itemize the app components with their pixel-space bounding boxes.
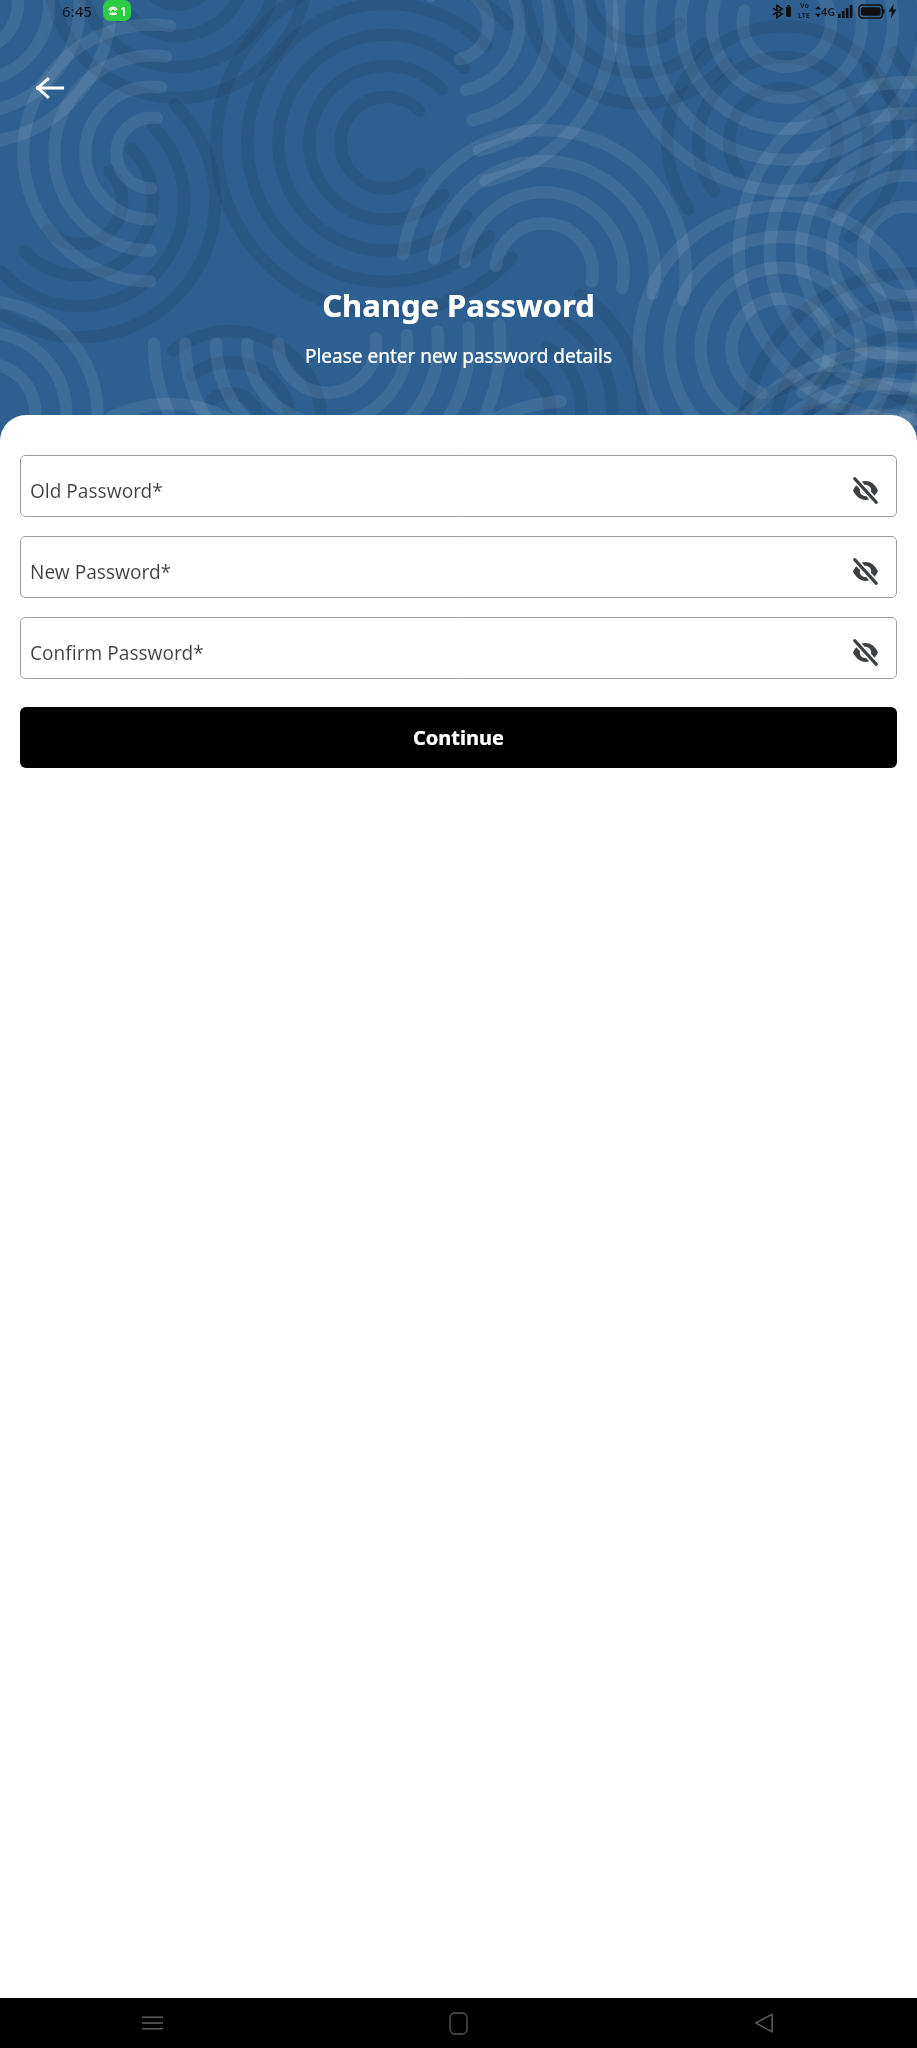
staticText: Old Password* [30,478,163,504]
button[interactable]: Confirm Password* [20,617,897,679]
button[interactable]: Show password [845,470,885,510]
staticText: Vo [800,1,809,11]
button[interactable]: Back [22,60,78,116]
staticText: 1 [120,3,127,19]
staticText: New Password* [30,559,172,585]
button[interactable]: Show password [845,632,885,672]
button[interactable]: Continue [20,707,897,768]
button[interactable]: Recent apps [0,1998,305,2048]
staticText: Change Password [0,284,917,326]
button[interactable]: New Password* [20,536,897,598]
button[interactable]: Show password [845,551,885,591]
staticText: Continue [413,724,504,751]
button[interactable]: Home [305,1998,611,2048]
staticText: 4G [821,4,836,19]
button[interactable]: Back [611,1998,917,2048]
staticText: 6:45 [62,1,92,21]
staticText: Please enter new password details [0,343,917,369]
staticText: Confirm Password* [30,640,204,666]
staticText: LTE [798,11,810,21]
button[interactable]: Old Password* [20,455,897,517]
